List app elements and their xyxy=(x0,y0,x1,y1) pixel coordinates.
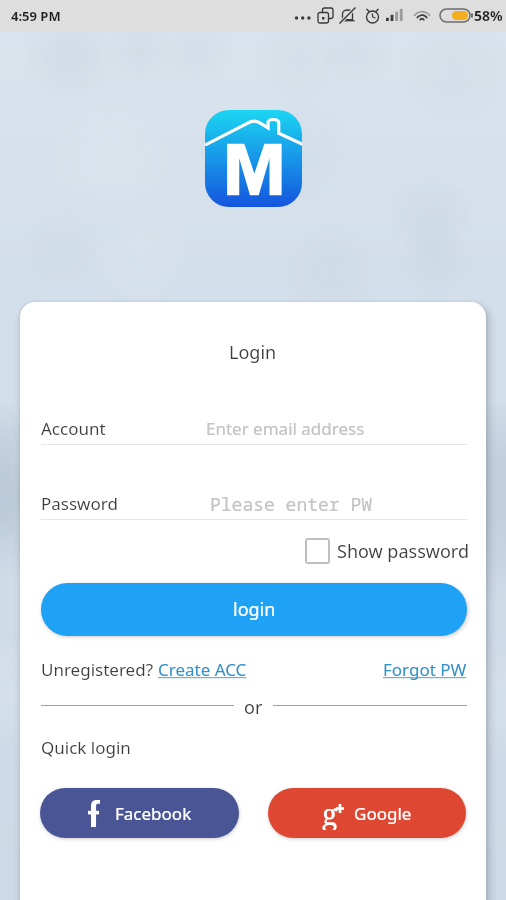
staticText: Password xyxy=(41,492,118,515)
button[interactable]: login xyxy=(41,583,467,636)
button[interactable]: Facebook xyxy=(40,788,239,838)
staticText: login xyxy=(233,597,276,622)
staticText: Facebook xyxy=(115,802,192,825)
staticText: or xyxy=(244,695,263,715)
staticText: Please enter PW xyxy=(210,492,372,517)
staticText: 58% xyxy=(474,6,503,25)
staticText: Quick login xyxy=(41,736,131,759)
button[interactable]: Forgot PW xyxy=(383,658,467,681)
staticText: 4:59 PM xyxy=(11,7,61,25)
staticText: Show password xyxy=(337,539,469,564)
staticText: g xyxy=(322,794,338,830)
staticText: Google xyxy=(354,802,412,825)
staticText: Account xyxy=(41,417,106,440)
button[interactable]: Show password xyxy=(305,534,469,568)
staticText: Enter email address xyxy=(206,417,365,440)
staticText: Login xyxy=(229,340,277,365)
button[interactable]: Create ACC xyxy=(158,658,247,681)
button[interactable]: g xyxy=(268,788,466,838)
staticText: Unregistered? xyxy=(41,658,158,681)
